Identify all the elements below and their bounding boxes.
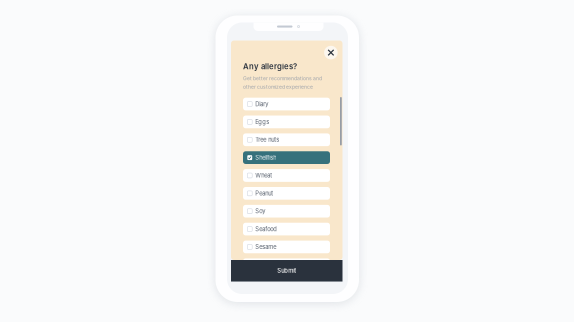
button[interactable]: Tree nuts bbox=[243, 133, 330, 146]
button[interactable]: Eggs bbox=[243, 116, 330, 128]
staticText: Sesame bbox=[255, 243, 276, 250]
staticText: Eggs bbox=[255, 118, 269, 125]
staticText: Shellfish bbox=[255, 154, 276, 161]
button[interactable]: Close bbox=[324, 46, 338, 59]
button[interactable]: Soy bbox=[243, 205, 330, 218]
button[interactable]: Wheat bbox=[243, 169, 330, 182]
button[interactable]: Diary bbox=[243, 98, 330, 110]
staticText: Get better recommendations and bbox=[243, 75, 322, 81]
button[interactable]: Peanut bbox=[243, 187, 330, 200]
staticText: Wheat bbox=[255, 172, 272, 179]
button[interactable]: Sesame bbox=[243, 241, 330, 253]
button[interactable]: Shellfish bbox=[243, 151, 330, 164]
button[interactable]: Submit bbox=[231, 260, 342, 281]
staticText: Submit bbox=[277, 267, 296, 274]
staticText: Soy bbox=[255, 208, 265, 215]
button[interactable]: Mustard bbox=[243, 258, 330, 271]
staticText: Any allergies? bbox=[243, 62, 297, 71]
button[interactable]: Seafood bbox=[243, 223, 330, 235]
staticText: Peanut bbox=[255, 190, 273, 197]
staticText: other customized experience bbox=[243, 84, 313, 90]
staticText: Seafood bbox=[255, 226, 277, 232]
staticText: Diary bbox=[255, 101, 268, 107]
staticText: Tree nuts bbox=[255, 136, 279, 143]
